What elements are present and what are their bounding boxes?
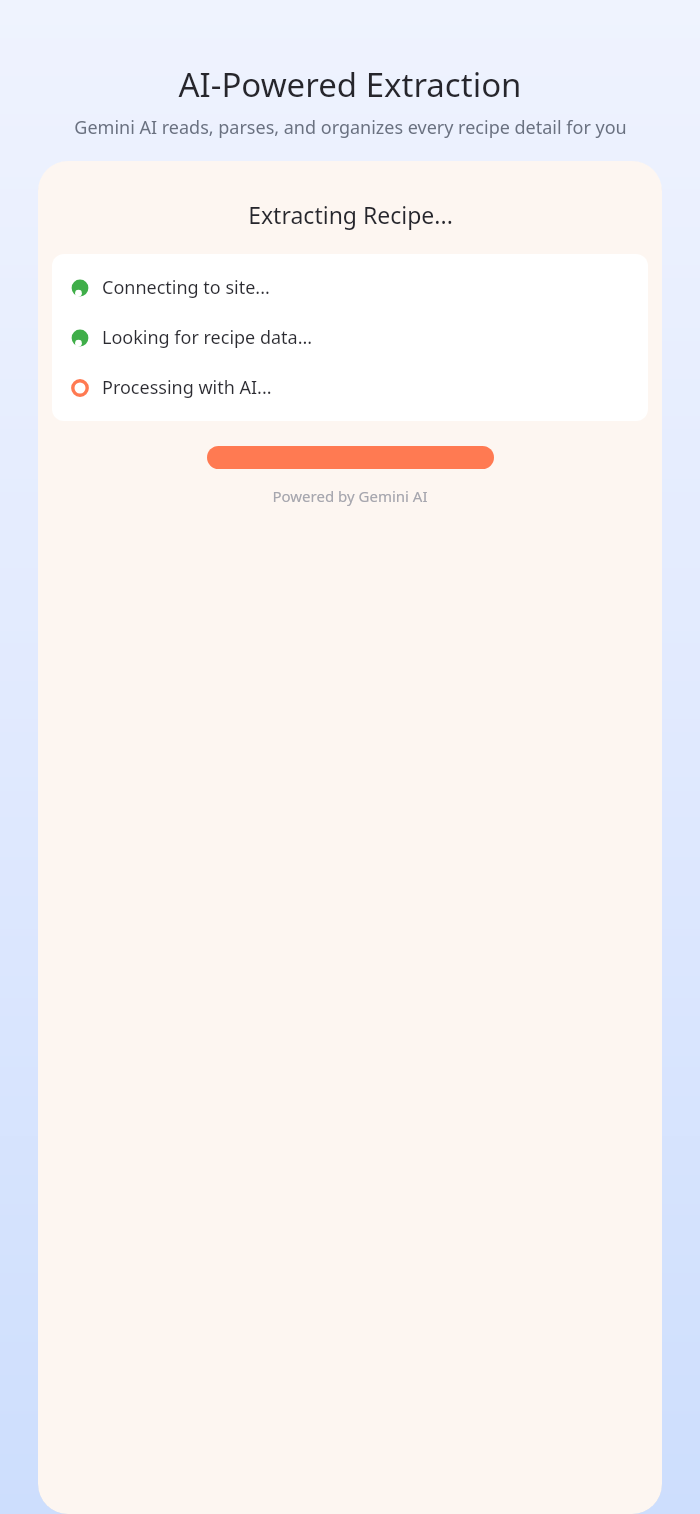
button[interactable] [207, 446, 494, 469]
staticText: Extracting Recipe... [248, 199, 453, 230]
button[interactable]: Completed [70, 275, 630, 300]
other: In progress [70, 378, 90, 398]
button[interactable]: Completed [70, 325, 630, 350]
staticText: Powered by Gemini AI [272, 486, 428, 506]
staticText: Gemini AI reads, parses, and organizes e… [74, 115, 627, 140]
other: Completed [70, 328, 90, 348]
other: Completed [70, 278, 90, 298]
staticText: AI-Powered Extraction [178, 62, 522, 107]
staticText: Looking for recipe data... [102, 325, 313, 350]
staticText: Connecting to site... [102, 275, 270, 300]
button[interactable]: In progress [70, 375, 630, 400]
staticText: Processing with AI... [102, 375, 272, 400]
